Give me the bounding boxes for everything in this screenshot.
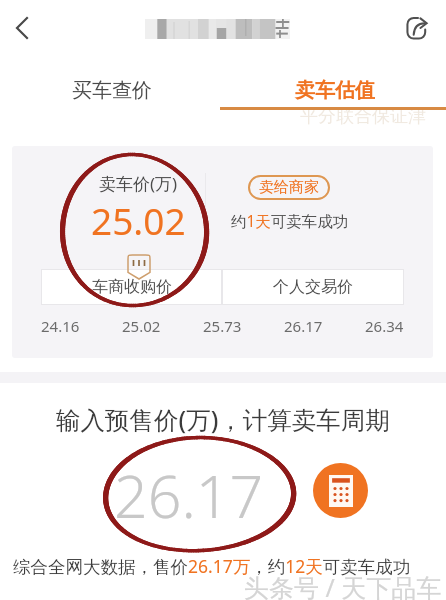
- staticText: 头条号 / 天下品车: [244, 570, 442, 600]
- button[interactable]: 买车查价: [0, 69, 223, 111]
- staticText: 26.34: [365, 316, 404, 336]
- button[interactable]: 车商收购价: [41, 269, 222, 305]
- staticText: 25.73: [203, 316, 242, 336]
- button[interactable]: 个人交易价: [222, 269, 404, 305]
- button[interactable]: Calculate: [313, 463, 368, 518]
- staticText: 车商收购价: [92, 277, 172, 297]
- staticText: 综合全网大数据，售价26.17万，约12天可卖车成功: [13, 554, 411, 578]
- staticText: 25.02: [122, 316, 161, 336]
- staticText: 卖车价(万): [99, 172, 178, 195]
- staticText: 约1天可卖车成功: [231, 210, 349, 231]
- staticText: 输入预售价(万)，计算卖车周期: [56, 403, 390, 436]
- staticText: 平分联合保证津: [300, 105, 426, 128]
- button[interactable]: 卖给商家: [248, 175, 330, 200]
- staticText: 24.16: [41, 316, 80, 336]
- staticText: 26.17: [284, 316, 323, 336]
- staticText: 卖车估值: [295, 78, 375, 103]
- staticText: 26.17: [114, 455, 264, 521]
- button[interactable]: 卖车估值: [223, 69, 446, 111]
- button[interactable]: Share: [396, 6, 440, 50]
- staticText: 卖给商家: [259, 178, 319, 197]
- staticText: 买车查价: [72, 78, 152, 103]
- button[interactable]: Back: [0, 6, 44, 50]
- staticText: 个人交易价: [273, 277, 353, 297]
- staticText: 25.02: [91, 195, 186, 245]
